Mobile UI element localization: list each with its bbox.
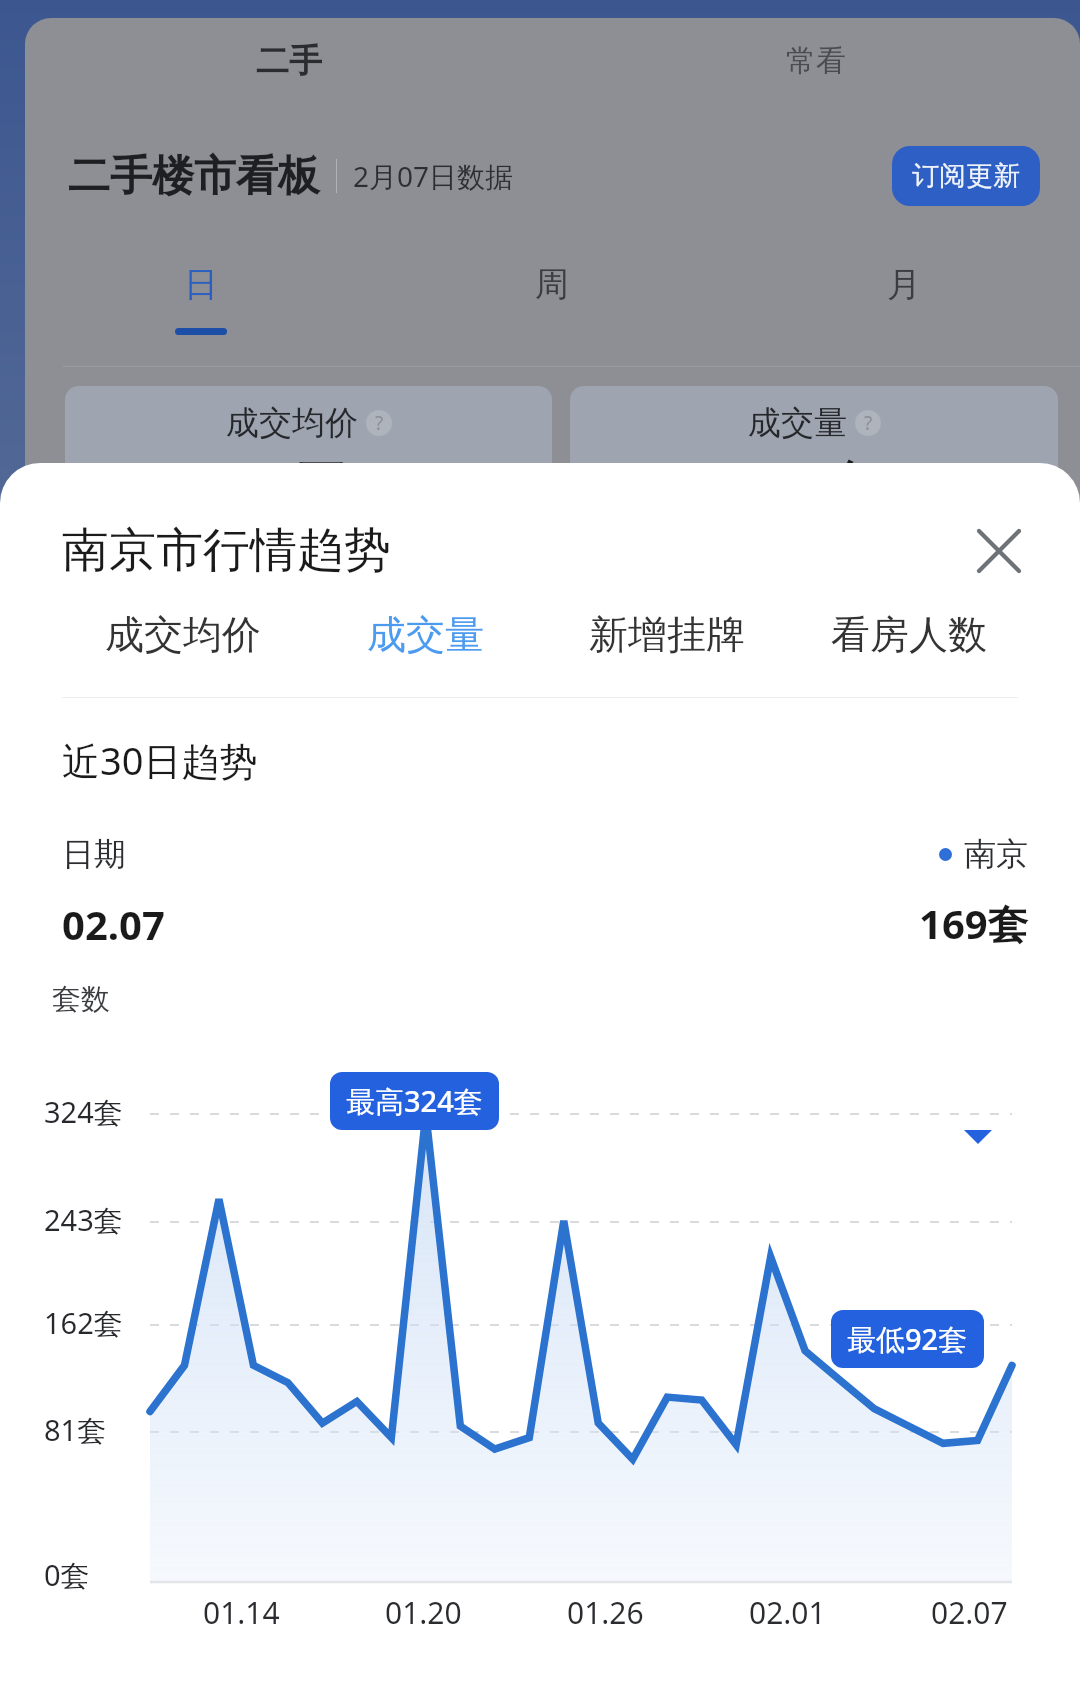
button[interactable]: 成交量 <box>570 386 1058 516</box>
staticText: 常看 <box>786 42 846 80</box>
staticText: 套数 <box>52 981 110 1018</box>
staticText: 1.79万/㎡ <box>211 450 406 510</box>
staticText: 新增挂牌 <box>589 610 745 659</box>
button[interactable]: 月 <box>728 263 1080 328</box>
staticText: 南京 <box>964 834 1028 874</box>
staticText: ? <box>864 410 873 436</box>
button[interactable]: 新增挂牌 <box>546 610 788 659</box>
button[interactable]: 看房人数 <box>788 610 1030 659</box>
staticText: 月 <box>887 263 921 306</box>
button[interactable]: 成交均价 <box>65 386 552 516</box>
staticText: 近30日趋势 <box>62 734 258 786</box>
button[interactable]: 订阅更新 <box>892 146 1040 206</box>
button[interactable]: 成交均价 <box>62 610 304 659</box>
staticText: ? <box>375 410 384 436</box>
staticText: 成交量 <box>367 610 484 659</box>
staticText: 01.26 <box>567 1592 644 1633</box>
staticText: 02.07 <box>62 897 165 951</box>
staticText: 02.01 <box>749 1592 826 1633</box>
staticText: 南京市行情趋势 <box>62 521 391 580</box>
staticText: 81套 <box>44 1410 107 1450</box>
staticText: 243套 <box>44 1200 123 1240</box>
staticText: 01.14 <box>203 1592 280 1633</box>
staticText: 324套 <box>44 1092 123 1132</box>
staticText: 最低92套 <box>847 1319 968 1359</box>
staticText: 成交均价 <box>226 402 358 444</box>
staticText: 成交量 <box>748 402 847 444</box>
staticText: 169套 <box>919 896 1028 951</box>
button[interactable]: 日 <box>25 263 376 335</box>
button[interactable]: 成交量 <box>304 610 546 659</box>
staticText: 最高324套 <box>346 1081 483 1121</box>
staticText: 看房人数 <box>831 610 987 659</box>
staticText: 周 <box>535 263 569 306</box>
staticText: 日 <box>184 263 218 306</box>
staticText: 2月07日数据 <box>353 157 514 195</box>
staticText: 0套 <box>44 1555 90 1595</box>
staticText: 162套 <box>44 1303 123 1343</box>
staticText: 订阅更新 <box>912 159 1020 193</box>
staticText: 01.20 <box>385 1592 462 1633</box>
staticText: 日期 <box>62 834 126 874</box>
staticText: 二手楼市看板 <box>68 150 320 203</box>
staticText: 02.07 <box>931 1592 1008 1633</box>
staticText: 二手 <box>256 40 322 82</box>
staticText: 成交均价 <box>105 610 261 659</box>
staticText: 169套 <box>754 450 874 510</box>
button[interactable]: 周 <box>376 263 728 328</box>
button[interactable]: 关闭 <box>970 522 1028 580</box>
